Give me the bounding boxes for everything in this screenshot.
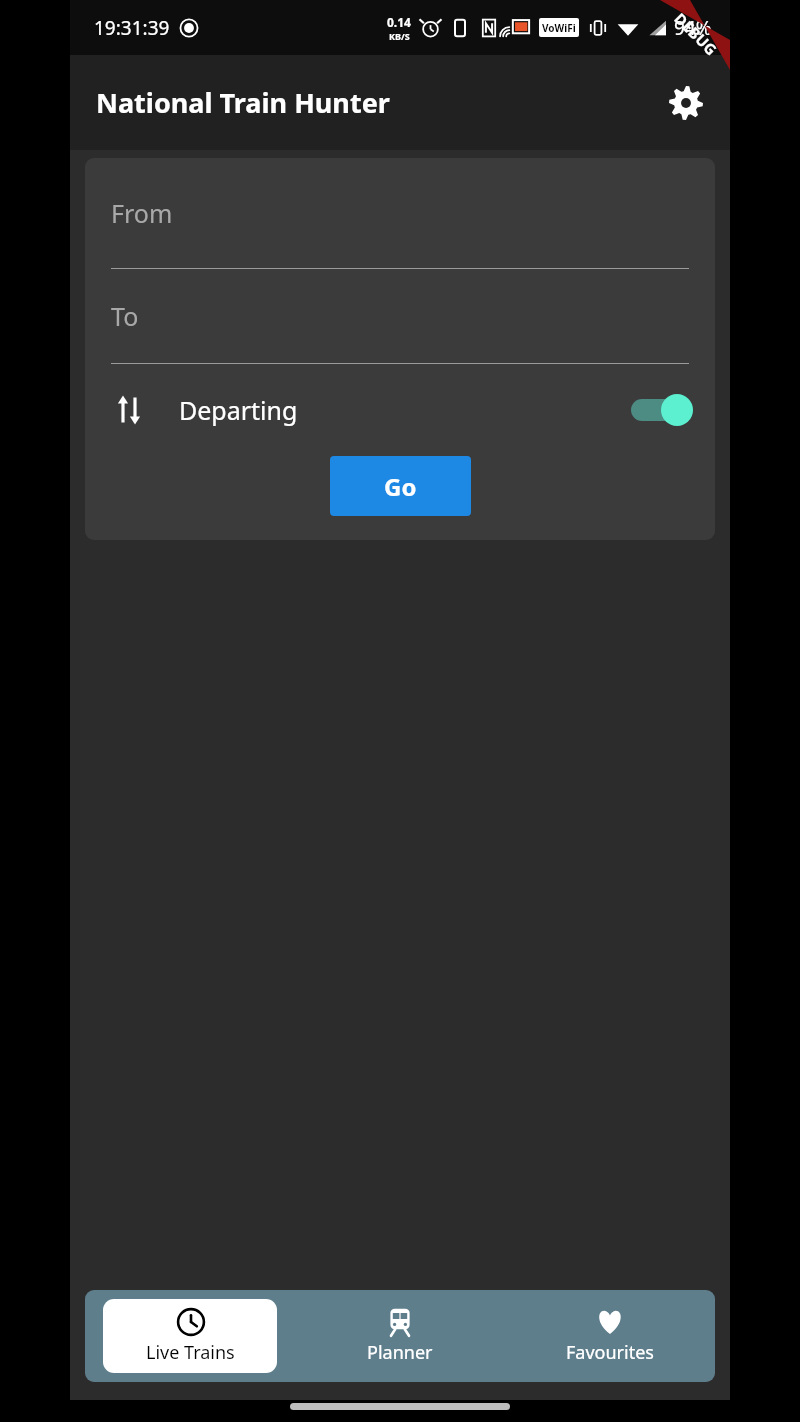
button[interactable]: From [85,158,715,268]
staticText: KB/S [389,30,410,42]
button[interactable]: Departing or arriving toggle [631,388,695,432]
staticText: National Train Hunter [96,84,390,121]
staticText: 0.14 [387,14,411,30]
staticText: DEBUG [670,8,721,59]
staticText: To [111,299,139,333]
button[interactable]: Go [330,456,471,516]
button[interactable]: Swap from and to [105,386,153,434]
button[interactable]: Settings [660,77,712,129]
staticText: VoWiFi [542,21,576,35]
staticText: Favourites [566,1340,654,1365]
button[interactable]: Live Trains [103,1299,277,1373]
button[interactable]: Favourites [505,1290,715,1382]
staticText: Go [384,470,417,503]
staticText: Departing [179,393,298,427]
button[interactable]: To [85,269,715,363]
staticText: 19:31:39 [94,15,170,41]
button[interactable]: Planner [295,1290,505,1382]
staticText: Planner [367,1340,433,1365]
staticText: From [111,196,173,230]
staticText: Live Trains [146,1340,235,1365]
staticText: 94% [674,15,712,41]
